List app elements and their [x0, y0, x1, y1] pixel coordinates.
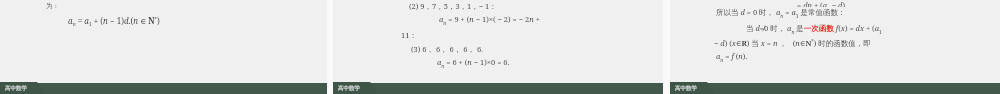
- staticText: an = 9 + (n − 1)×( − 2) = − 2n +: [439, 14, 663, 26]
- staticText: − d) (x∈R) 当 x = n ， (n∈N*) 时的函数值，即: [714, 38, 1000, 48]
- staticText: (2) 9，7，5，3，1，− 1：: [409, 1, 663, 11]
- button[interactable]: 高中数学: [0, 76, 44, 94]
- button[interactable]: = dn + (a1 − d)，: [670, 0, 1000, 94]
- staticText: (3) 6， 6， 6， 6， 6.: [411, 44, 663, 54]
- staticText: 11：: [401, 30, 663, 40]
- staticText: 高中数学: [338, 85, 360, 92]
- staticText: 所以当 d = 0 时， an = a1 是常值函数：: [716, 7, 1000, 19]
- staticText: 为：: [46, 2, 327, 10]
- staticText: 当 d≠0 时， an 是一次函数 f(x) = dx + (a1: [746, 23, 1000, 35]
- button[interactable]: 高中数学: [333, 76, 377, 94]
- staticText: 高中数学: [675, 85, 697, 92]
- staticText: 高中数学: [5, 85, 27, 92]
- button[interactable]: 高中数学: [670, 76, 714, 94]
- staticText: = dn + (a1 − d)，: [797, 0, 1000, 7]
- staticText: an = 6 + (n − 1)×0 = 6.: [437, 57, 663, 69]
- button[interactable]: 为：: [0, 0, 327, 94]
- button[interactable]: (2) 9，7，5，3，1，− 1：: [333, 0, 663, 94]
- staticText: an = a1 + (n − 1)d.(n ∈ N*): [68, 15, 327, 28]
- staticText: an = f (n).: [716, 51, 1000, 63]
